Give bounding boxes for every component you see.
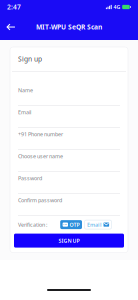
staticText: +91 Phone number <box>18 131 63 138</box>
staticText: Email <box>18 109 31 116</box>
staticText: Email <box>87 221 102 228</box>
staticText: 2:47 <box>7 3 21 11</box>
staticText: 4G <box>114 3 121 11</box>
staticText: Sign up <box>18 55 42 63</box>
staticText: Password <box>18 175 42 182</box>
button[interactable]: OTP <box>60 220 82 229</box>
button[interactable]: Email <box>84 220 111 229</box>
staticText: Choose user name <box>18 153 63 160</box>
button[interactable]: Back <box>0 14 22 40</box>
staticText: Verification : <box>18 221 47 228</box>
staticText: OTP <box>70 221 80 228</box>
staticText: MIT-WPU SeQR Scan <box>36 23 102 31</box>
staticText: Name <box>18 87 33 94</box>
staticText: SIGN UP <box>58 237 79 244</box>
staticText: Confirm password <box>18 197 62 204</box>
button[interactable]: SIGN UP <box>14 234 124 248</box>
